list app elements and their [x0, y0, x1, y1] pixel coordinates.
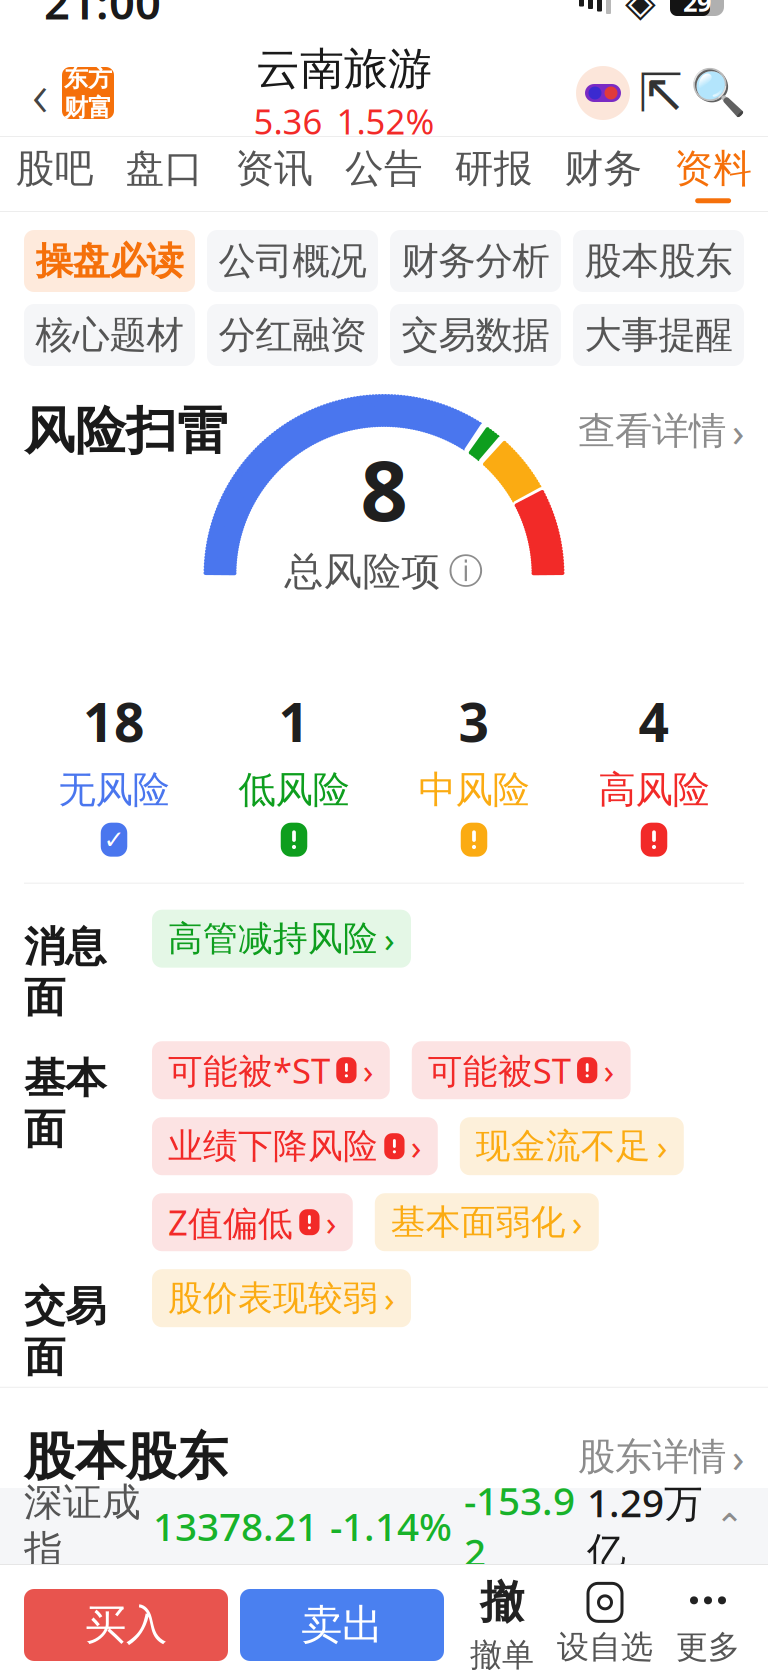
- button[interactable]: 资讯: [219, 137, 329, 211]
- staticText: ›: [604, 1047, 615, 1093]
- staticText: 撤单: [470, 1635, 534, 1670]
- staticText: 财富: [64, 93, 112, 122]
- staticText: 研报: [455, 145, 533, 192]
- staticText: 基本面: [24, 1053, 106, 1155]
- staticText: 查看详情: [578, 408, 726, 454]
- staticText: 操盘必读: [35, 238, 183, 284]
- button[interactable]: 智能助手: [574, 64, 632, 122]
- staticText: ›: [326, 1199, 337, 1245]
- staticText: ›: [732, 1430, 744, 1483]
- staticText: ›: [384, 1275, 395, 1321]
- button[interactable]: 研报: [439, 137, 549, 211]
- staticText: 可能被ST: [428, 1047, 571, 1093]
- staticText: 股本股东: [24, 1426, 228, 1488]
- button[interactable]: 搜索: [690, 64, 746, 122]
- staticText: 股价表现较弱: [168, 1277, 378, 1319]
- button[interactable]: 查看详情: [578, 405, 744, 458]
- staticText: ⇱: [638, 63, 683, 123]
- staticText: 买入: [85, 1600, 167, 1650]
- staticText: 设自选: [557, 1627, 653, 1667]
- staticText: ›: [411, 1123, 422, 1169]
- staticText: ◈: [625, 0, 656, 25]
- button[interactable]: 交易数据: [390, 304, 561, 366]
- staticText: -1.14%: [330, 1500, 452, 1552]
- staticText: 3: [458, 686, 489, 757]
- staticText: ›: [732, 405, 744, 458]
- button[interactable]: 返回: [18, 63, 62, 123]
- staticText: 高管减持风险: [168, 917, 378, 960]
- button[interactable]: 分享: [632, 64, 690, 122]
- staticText: 大事提醒: [584, 312, 732, 358]
- staticText: 1: [278, 686, 309, 757]
- button[interactable]: 业绩下降风险: [152, 1117, 438, 1175]
- button[interactable]: 股吧: [0, 137, 110, 211]
- staticText: 深证成指: [24, 1478, 141, 1573]
- button[interactable]: 现金流不足: [460, 1117, 684, 1175]
- staticText: 撤: [480, 1575, 524, 1629]
- staticText: 核心题材: [35, 312, 183, 358]
- staticText: 分红融资: [218, 312, 366, 358]
- staticText: 中风险: [418, 767, 529, 813]
- button[interactable]: Z值偏低: [152, 1193, 353, 1251]
- staticText: ›: [384, 916, 395, 962]
- staticText: 股东详情: [578, 1434, 726, 1480]
- button[interactable]: 股本股东: [573, 230, 744, 292]
- button[interactable]: 操盘必读: [24, 230, 195, 292]
- staticText: 基本面弱化: [391, 1201, 566, 1243]
- button[interactable]: 资料: [658, 137, 768, 211]
- staticText: 13378.21: [153, 1500, 318, 1552]
- button[interactable]: 可能被ST: [412, 1041, 631, 1099]
- button[interactable]: 撤: [454, 1575, 550, 1670]
- staticText: ⌃: [715, 1506, 744, 1546]
- staticText: 1.52%: [336, 98, 434, 144]
- button[interactable]: 核心题材: [24, 304, 195, 366]
- staticText: 18: [83, 686, 145, 757]
- staticText: 交易数据: [401, 312, 549, 358]
- button[interactable]: 可能被*ST: [152, 1041, 390, 1099]
- button[interactable]: 公司概况: [207, 230, 378, 292]
- staticText: 5.36: [253, 98, 322, 144]
- staticText: ›: [657, 1123, 668, 1169]
- staticText: 21:00: [44, 0, 161, 32]
- staticText: 8: [360, 434, 407, 544]
- button[interactable]: 买入: [24, 1589, 228, 1661]
- staticText: Z值偏低: [168, 1199, 293, 1245]
- staticText: 29: [683, 0, 711, 19]
- button[interactable]: 公告: [329, 137, 439, 211]
- staticText: ✓: [103, 825, 124, 854]
- staticText: 消息面: [24, 922, 106, 1023]
- staticText: 可能被*ST: [168, 1047, 330, 1093]
- button[interactable]: 股价表现较弱: [152, 1269, 411, 1327]
- staticText: 交易面: [24, 1281, 106, 1383]
- staticText: 🔍: [690, 67, 746, 119]
- staticText: 公司概况: [218, 238, 366, 284]
- button[interactable]: 财务: [549, 137, 658, 211]
- staticText: 资讯: [235, 145, 313, 192]
- staticText: 公告: [345, 145, 423, 192]
- staticText: 4: [638, 686, 669, 757]
- staticText: 盘口: [126, 145, 204, 192]
- button[interactable]: 盘口: [110, 137, 219, 211]
- button[interactable]: 更多: [660, 1583, 756, 1667]
- staticText: 东方: [64, 63, 112, 93]
- button[interactable]: 深证成指: [0, 1488, 768, 1564]
- staticText: 业绩下降风险: [168, 1125, 378, 1167]
- button[interactable]: 基本面弱化: [375, 1193, 599, 1251]
- staticText: ›: [572, 1199, 583, 1245]
- button[interactable]: 卖出: [240, 1589, 444, 1661]
- button[interactable]: 大事提醒: [573, 304, 744, 366]
- staticText: 云南旅游: [256, 42, 432, 96]
- staticText: 财务分析: [401, 238, 549, 284]
- button[interactable]: 设自选: [550, 1583, 660, 1667]
- staticText: 股吧: [16, 145, 94, 192]
- button[interactable]: 分红融资: [207, 304, 378, 366]
- staticText: 无风险: [58, 767, 169, 813]
- staticText: 总风险项: [284, 548, 440, 595]
- button[interactable]: 股东详情: [578, 1430, 744, 1483]
- staticText: 财务: [564, 145, 642, 192]
- staticText: ‹: [32, 52, 48, 134]
- button[interactable]: 东方财富: [62, 67, 114, 119]
- staticText: 低风险: [238, 767, 349, 813]
- button[interactable]: 财务分析: [390, 230, 561, 292]
- button[interactable]: 高管减持风险: [152, 910, 411, 968]
